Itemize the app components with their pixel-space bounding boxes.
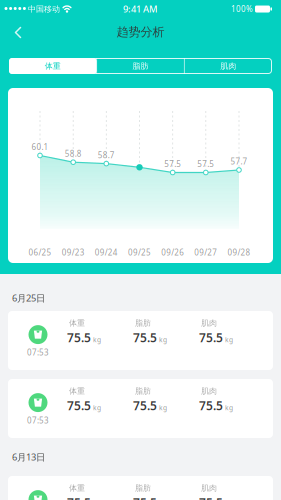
staticText: 75.5 <box>199 329 223 345</box>
staticText: 09/26 <box>161 247 184 258</box>
button[interactable]: 07:53 <box>8 476 273 500</box>
staticText: 脂肪 <box>135 318 151 328</box>
staticText: 09/25 <box>128 247 151 258</box>
staticText: 57.7 <box>230 156 247 167</box>
staticText: 75.5 <box>133 397 157 413</box>
staticText: 58.7 <box>98 150 115 160</box>
staticText: 75.5 <box>199 397 223 413</box>
staticText: 体重 <box>69 386 85 396</box>
staticText: 脂肪 <box>135 386 151 396</box>
staticText: 09/27 <box>194 247 217 258</box>
staticText: 09/23 <box>62 247 85 258</box>
staticText: kg <box>159 403 167 412</box>
button[interactable]: 07:53 <box>8 379 273 438</box>
staticText: 75.5 <box>67 329 91 345</box>
staticText: 58.8 <box>65 148 82 159</box>
staticText: 6月25日 <box>12 292 45 304</box>
staticText: 肌肉 <box>201 318 217 328</box>
button[interactable]: 07:53 <box>8 311 273 370</box>
staticText: 体重 <box>45 61 61 71</box>
staticText: 100% <box>231 4 253 14</box>
staticText: 09/24 <box>95 247 118 258</box>
staticText: kg <box>93 403 101 412</box>
staticText: 75.5 <box>67 397 91 413</box>
staticText: 脂肪 <box>132 61 148 71</box>
staticText: 趋势分析 <box>116 25 164 39</box>
staticText: 75.5 <box>133 329 157 345</box>
staticText: kg <box>93 335 101 344</box>
staticText: kg <box>159 335 167 344</box>
button[interactable]: 体重 <box>9 58 97 74</box>
staticText: 57.5 <box>164 159 181 169</box>
staticText: 脂肪 <box>135 483 151 493</box>
staticText: kg <box>225 335 233 344</box>
staticText: 肌肉 <box>201 386 217 396</box>
staticText: 体重 <box>69 483 85 493</box>
staticText: 07:53 <box>27 415 49 426</box>
staticText: 75.5 <box>199 494 223 500</box>
staticText: 60.1 <box>31 142 48 152</box>
button[interactable]: 肌肉 <box>184 58 272 74</box>
staticText: 09/28 <box>227 247 250 258</box>
staticText: 6月13日 <box>12 451 45 463</box>
staticText: 9:41 AM <box>123 3 158 15</box>
staticText: 75.5 <box>133 494 157 500</box>
staticText: 肌肉 <box>220 61 236 71</box>
staticText: kg <box>225 403 233 412</box>
staticText: 06/25 <box>28 247 51 258</box>
staticText: 肌肉 <box>201 483 217 493</box>
staticText: 07:53 <box>27 347 49 358</box>
staticText: 57.5 <box>197 159 214 169</box>
staticText: 体重 <box>69 318 85 328</box>
staticText: 75.5 <box>67 494 91 500</box>
staticText: 中国移动 <box>28 4 60 14</box>
button[interactable]: Back <box>8 22 38 42</box>
button[interactable]: 脂肪 <box>97 58 184 74</box>
